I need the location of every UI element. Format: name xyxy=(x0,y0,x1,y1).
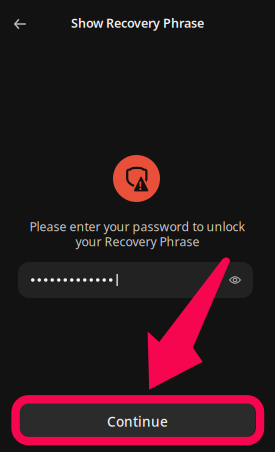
staticText: your Recovery Phrase xyxy=(75,233,199,250)
staticText: Please enter your password to unlock xyxy=(29,218,245,235)
button[interactable]: Show password xyxy=(222,267,248,293)
staticText: Continue xyxy=(107,412,168,431)
button[interactable]: Continue xyxy=(20,403,255,437)
staticText: Show Recovery Phrase xyxy=(71,14,204,32)
button[interactable]: Back xyxy=(5,9,35,39)
